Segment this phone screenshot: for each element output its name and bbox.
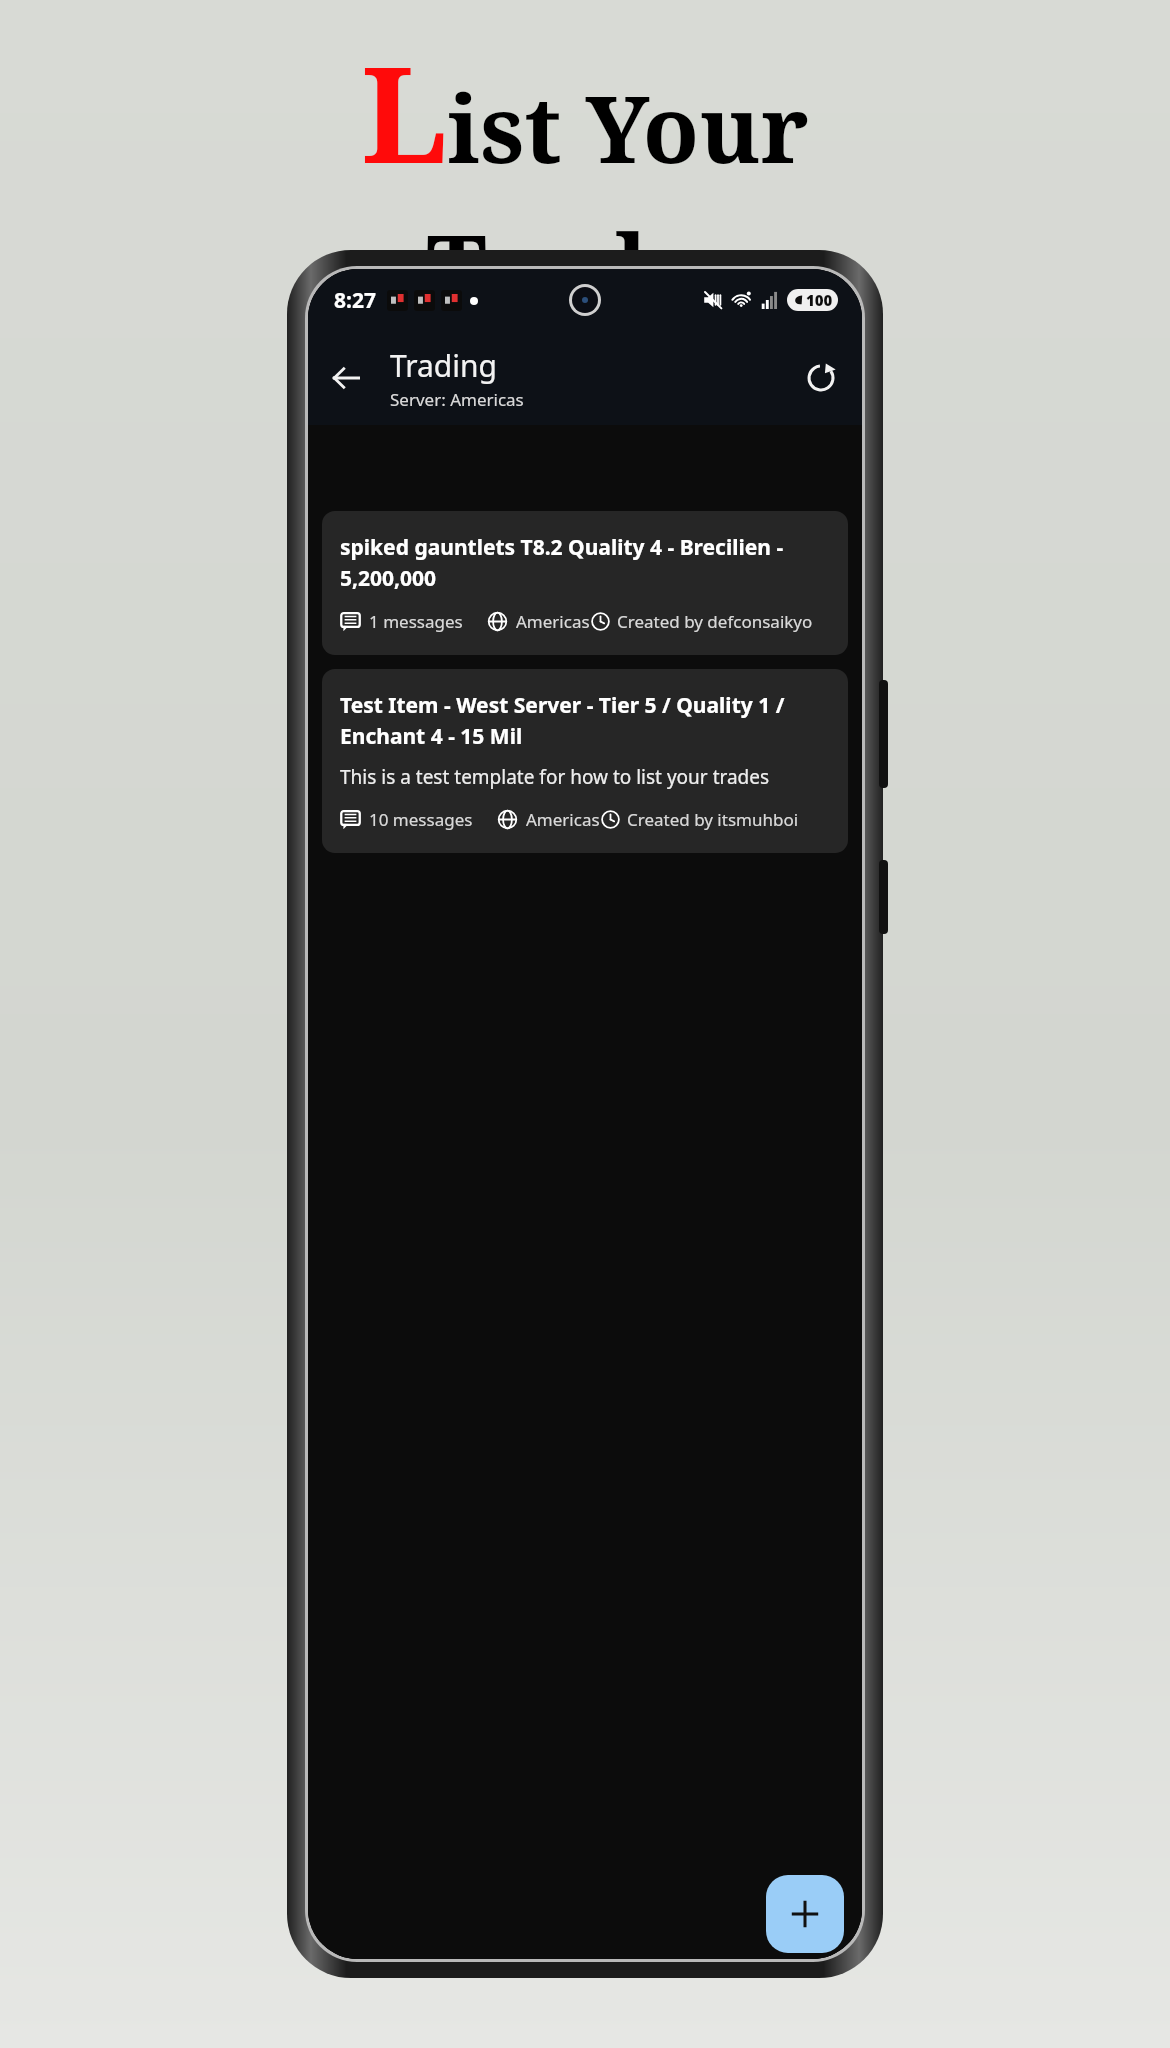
staticText: Americas bbox=[526, 808, 600, 831]
staticText: Created by defconsaikyo 6d ago bbox=[617, 610, 830, 633]
staticText: spiked gauntlets T8.2 Quality 4 - Brecil… bbox=[340, 533, 830, 592]
staticText: 1 messages bbox=[369, 610, 463, 633]
staticText: Test Item - West Server - Tier 5 / Quali… bbox=[340, 691, 830, 750]
staticText: Trading bbox=[390, 345, 497, 386]
staticText: Created by itsmuhboi 41d ago bbox=[627, 808, 830, 831]
staticText: Trades bbox=[426, 204, 745, 329]
button[interactable]: Test Item - West Server - Tier 5 / Quali… bbox=[322, 669, 848, 853]
staticText: This is a test template for how to list … bbox=[340, 764, 770, 790]
button[interactable]: Refresh bbox=[794, 351, 848, 405]
staticText: Americas bbox=[516, 610, 590, 633]
staticText: 100 bbox=[806, 290, 833, 310]
staticText: 8:27 bbox=[334, 286, 376, 315]
button[interactable]: Back bbox=[320, 352, 372, 404]
staticText: Server: Americas bbox=[390, 388, 524, 411]
staticText: 10 messages bbox=[369, 808, 473, 831]
button[interactable]: spiked gauntlets T8.2 Quality 4 - Brecil… bbox=[322, 511, 848, 655]
staticText: List Your bbox=[361, 22, 809, 202]
button[interactable]: Add trade bbox=[766, 1875, 844, 1953]
